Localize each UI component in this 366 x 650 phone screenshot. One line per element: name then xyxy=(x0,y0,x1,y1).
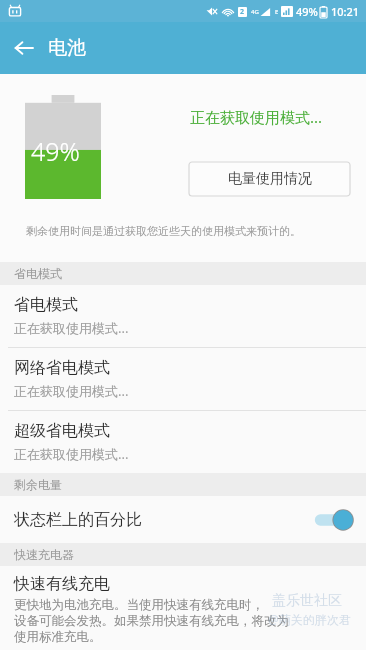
staticText: 状态栏上的百分比 xyxy=(14,510,314,530)
staticText: 10:21 xyxy=(331,4,360,19)
staticText: 电量使用情况 xyxy=(228,170,312,188)
staticText: 正在获取使用模式... xyxy=(14,382,129,400)
staticText: E xyxy=(275,8,279,16)
staticText: 电池 xyxy=(48,36,86,60)
staticText: 正在获取使用模式... xyxy=(14,445,129,463)
staticText: 超级省电模式 xyxy=(14,421,110,441)
staticText: 更快地为电池充电。当使用快速有线充电时， xyxy=(14,597,264,613)
staticText: 正在获取使用模式... xyxy=(14,319,129,337)
button[interactable]: 快速有线充电 xyxy=(0,566,366,650)
staticText: 剩余电量 xyxy=(14,477,62,492)
staticText: 正在获取使用模式... xyxy=(190,107,323,127)
staticText: 省电模式 xyxy=(14,266,62,281)
staticText: 49% xyxy=(31,134,80,168)
staticText: 快速充电器 xyxy=(14,547,74,562)
button[interactable]: 电量使用情况 xyxy=(189,162,350,196)
staticText: 49% xyxy=(296,4,318,19)
staticText: 盖乐世社区 xyxy=(272,592,342,610)
staticText: 使用标准充电。 xyxy=(14,629,102,645)
staticText: 设备可能会发热。如果禁用快速有线充电，将改为 xyxy=(14,613,289,629)
staticText: 省电模式 xyxy=(14,295,78,315)
staticText: 快速有线充电 xyxy=(14,574,110,594)
button[interactable]: 状态栏上的百分比 xyxy=(0,496,366,543)
button[interactable]: 网络省电模式 xyxy=(0,348,366,410)
staticText: 2 xyxy=(240,7,245,17)
button[interactable]: 省电模式 xyxy=(0,285,366,347)
staticText: @萌关的胖次君 xyxy=(268,611,351,627)
staticText: 剩余使用时间是通过获取您近些天的使用模式来预计的。 xyxy=(26,224,301,238)
staticText: 4G xyxy=(251,8,259,16)
button[interactable]: 返回 xyxy=(0,24,48,72)
staticText: 网络省电模式 xyxy=(14,358,110,378)
button[interactable]: 超级省电模式 xyxy=(0,411,366,473)
